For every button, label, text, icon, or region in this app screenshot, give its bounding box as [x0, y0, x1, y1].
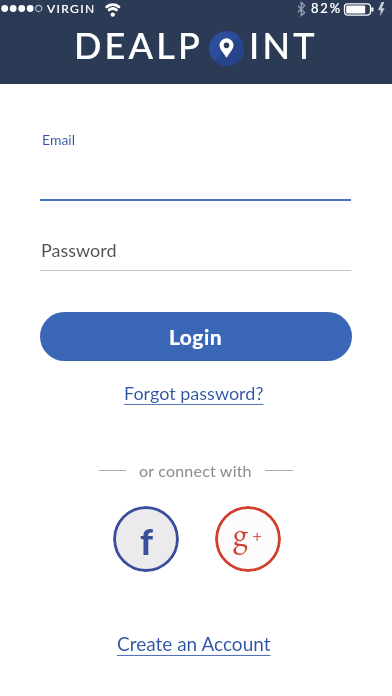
staticText: or connect with — [139, 461, 252, 480]
button[interactable]: Email — [40, 128, 352, 201]
staticText: + — [252, 524, 263, 546]
staticText: Login — [169, 324, 223, 349]
staticText: VIRGIN — [47, 1, 96, 15]
staticText: DEALP — [74, 23, 204, 66]
button[interactable]: Login — [40, 312, 352, 361]
staticText: Email — [42, 131, 76, 148]
button[interactable]: Forgot password? — [124, 382, 264, 404]
staticText: g — [233, 511, 248, 555]
button[interactable]: g — [215, 506, 281, 572]
button[interactable]: Create an Account — [117, 632, 276, 655]
staticText: INT — [249, 23, 318, 66]
staticText: f — [140, 519, 154, 562]
button[interactable]: Password — [40, 234, 352, 271]
button[interactable]: f — [113, 506, 179, 572]
staticText: Password — [41, 239, 117, 261]
staticText: 82% — [311, 0, 342, 16]
staticText: Create an Account — [117, 632, 276, 655]
staticText: Forgot password? — [124, 382, 264, 404]
